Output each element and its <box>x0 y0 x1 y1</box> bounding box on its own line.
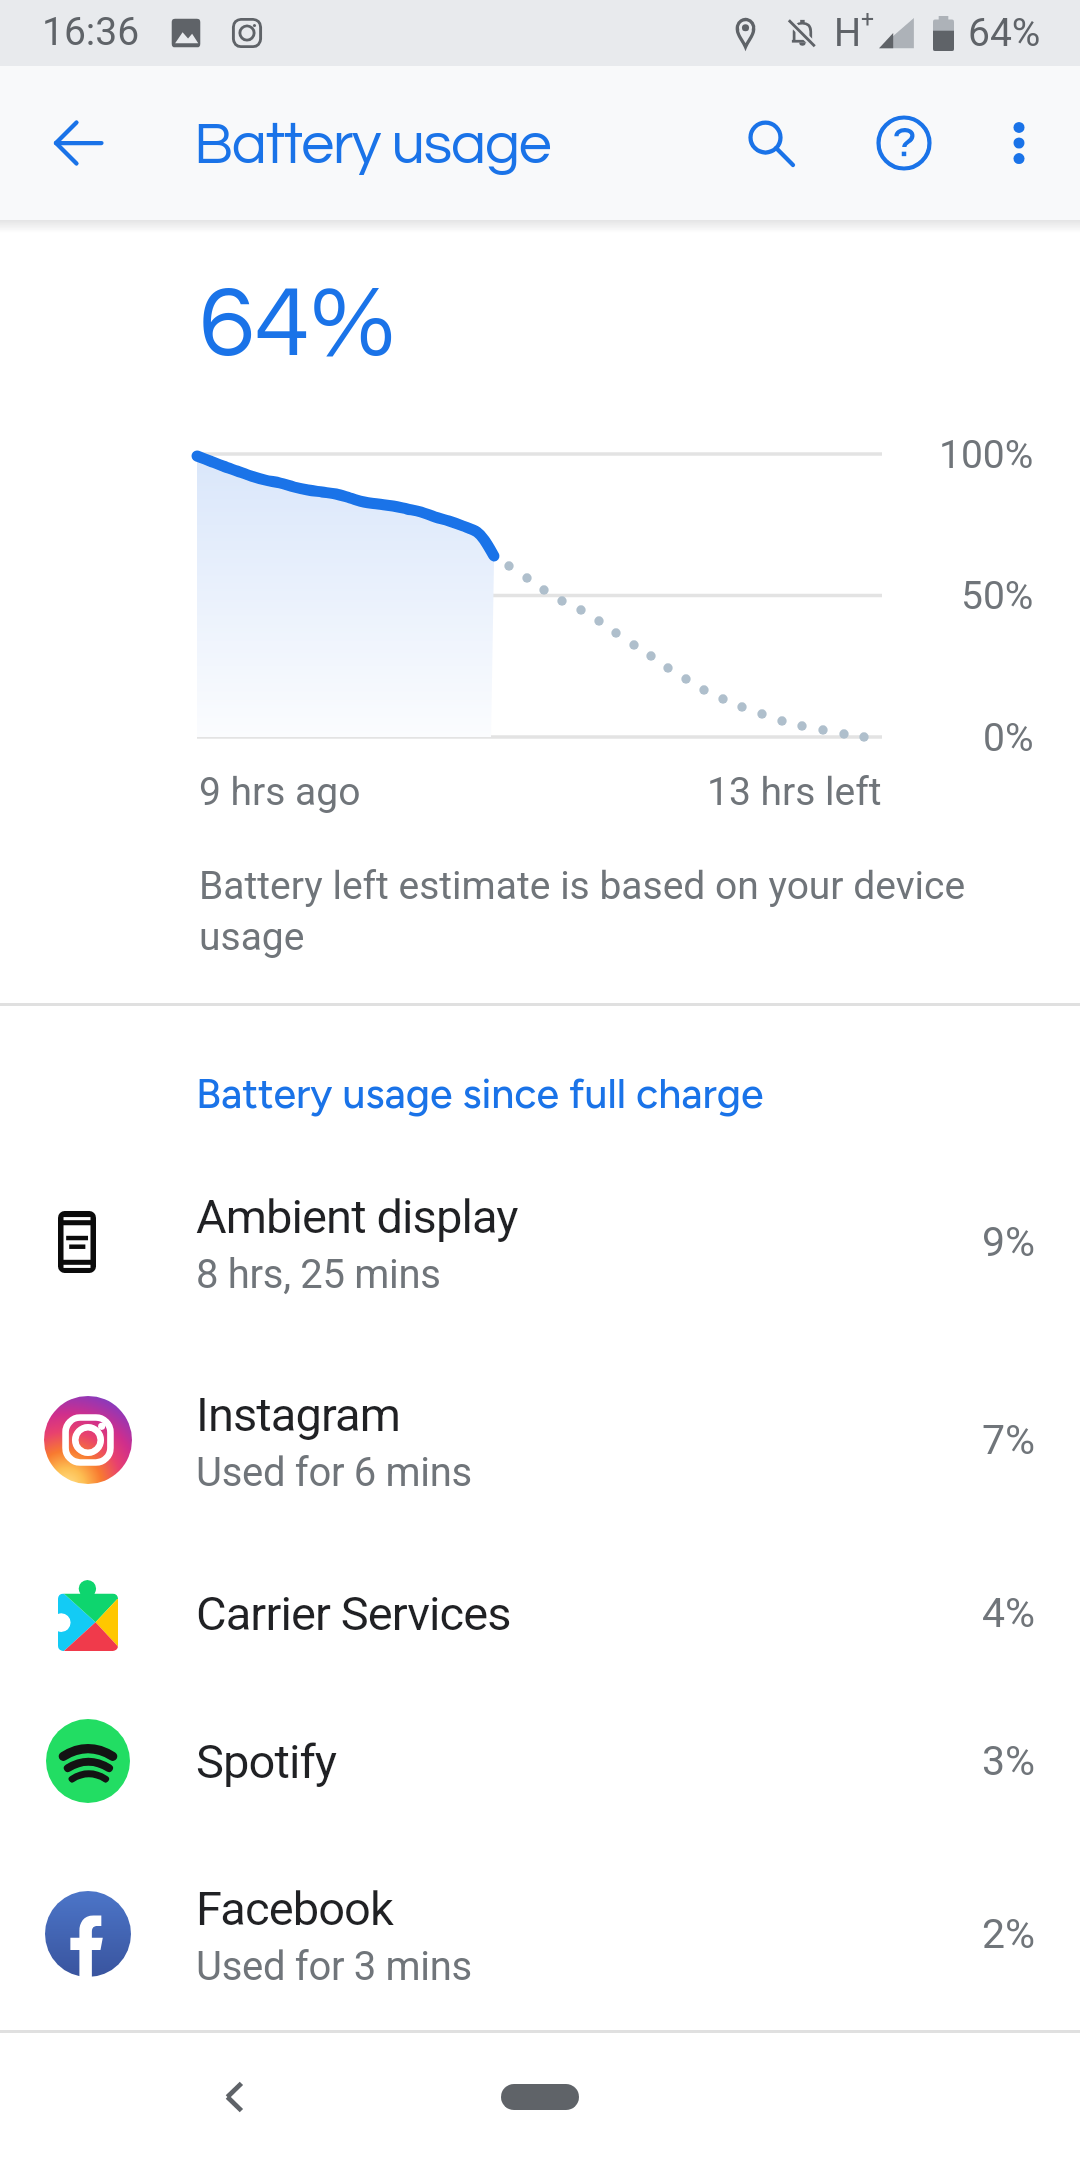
staticText: 4% <box>982 1589 1036 1637</box>
staticText: 8 hrs, 25 mins <box>196 1251 441 1298</box>
staticText: 64% <box>199 272 396 376</box>
staticText: 0% <box>983 715 1034 761</box>
button[interactable]: Home <box>501 2084 579 2110</box>
staticText: Battery usage <box>194 115 551 176</box>
staticText: 64% <box>968 10 1041 56</box>
staticText: + <box>861 6 875 33</box>
staticText: 9 hrs ago <box>199 769 361 815</box>
staticText: Battery usage since full charge <box>196 1069 764 1118</box>
staticText: 3% <box>982 1737 1036 1785</box>
button[interactable]: Search <box>723 95 819 191</box>
button[interactable]: Spotify <box>0 1687 1080 1835</box>
staticText: Ambient display <box>196 1189 518 1244</box>
staticText: Spotify <box>196 1734 337 1789</box>
staticText: 9% <box>982 1218 1036 1266</box>
staticText: 100% <box>939 432 1034 478</box>
staticText: Instagram <box>196 1387 401 1442</box>
button[interactable]: Instagram <box>0 1341 1080 1539</box>
button[interactable]: Back <box>175 2037 295 2157</box>
staticText: Facebook <box>196 1881 393 1936</box>
button[interactable]: Carrier Services <box>0 1539 1080 1687</box>
button[interactable]: Help <box>856 95 952 191</box>
staticText: 2% <box>982 1910 1036 1958</box>
button[interactable]: Facebook <box>0 1835 1080 2033</box>
staticText: Carrier Services <box>196 1586 511 1641</box>
staticText: 16:36 <box>42 9 140 55</box>
button[interactable]: More options <box>971 95 1067 191</box>
staticText: 13 hrs left <box>707 769 882 815</box>
staticText: 7% <box>982 1416 1036 1464</box>
staticText: Battery left estimate is based on your d… <box>199 863 989 959</box>
button[interactable]: Ambient display <box>0 1143 1080 1341</box>
button[interactable]: Back <box>32 97 124 189</box>
staticText: 50% <box>961 573 1034 619</box>
staticText: Used for 6 mins <box>196 1449 472 1496</box>
staticText: H <box>834 11 862 56</box>
staticText: Used for 3 mins <box>196 1943 472 1990</box>
